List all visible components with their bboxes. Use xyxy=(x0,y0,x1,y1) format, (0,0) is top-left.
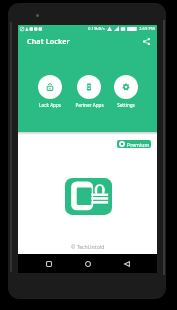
staticText: 0.19kB/s xyxy=(88,26,105,32)
button[interactable]: Home xyxy=(81,257,94,270)
button[interactable]: Settings xyxy=(104,75,148,108)
staticText: Lock Apps xyxy=(39,102,61,108)
button[interactable]: Lock Apps xyxy=(28,75,72,108)
staticText: 2:59 PM xyxy=(139,26,155,32)
staticText: Premium xyxy=(127,141,150,148)
button[interactable]: Premium xyxy=(117,140,151,148)
staticText: © TechUntold xyxy=(71,243,105,250)
staticText: Chat Locker xyxy=(27,36,70,46)
staticText: Settings xyxy=(117,102,135,108)
button[interactable]: Recents xyxy=(42,257,55,270)
button[interactable]: Partner Apps xyxy=(67,75,111,108)
button[interactable]: Back xyxy=(120,257,133,270)
button[interactable]: Share xyxy=(139,34,154,49)
staticText: Partner Apps xyxy=(75,102,104,108)
